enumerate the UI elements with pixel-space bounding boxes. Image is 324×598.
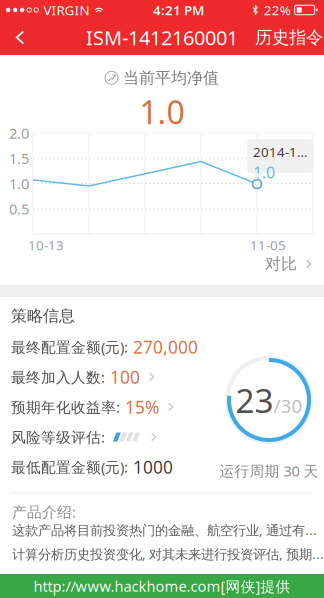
staticText: 2.0 bbox=[9, 123, 29, 143]
staticText: 11-05 bbox=[250, 236, 286, 254]
button[interactable]: 风险等级评估: bbox=[11, 422, 201, 452]
staticText: 最终配置金额(元): bbox=[11, 337, 128, 357]
staticText: 23 bbox=[235, 378, 273, 422]
staticText: 计算分析历史投资变化, 对其未来进行投资评估, 预期收益率在 bbox=[12, 545, 324, 563]
staticText: 这款产品将目前投资热门的金融、航空行业, 通过有效的大数据 bbox=[12, 521, 324, 539]
staticText: 对比 bbox=[265, 254, 297, 274]
staticText: 1.0 bbox=[253, 162, 275, 183]
staticText: 1000 bbox=[133, 455, 173, 478]
staticText: 当前平均净值 bbox=[123, 68, 219, 88]
staticText: VIRGIN bbox=[43, 1, 89, 19]
staticText: 运行周期 30 天 bbox=[219, 461, 318, 480]
button[interactable]: 预期年化收益率: bbox=[11, 392, 201, 422]
staticText: 1.0 bbox=[9, 174, 29, 193]
staticText: http://www.hackhome.com[网侠]提供 bbox=[33, 576, 290, 596]
staticText: 15% bbox=[125, 395, 159, 418]
staticText: 22% bbox=[264, 1, 291, 19]
button[interactable]: 对比 bbox=[254, 255, 324, 273]
staticText: 产品介绍: bbox=[12, 502, 76, 521]
staticText: 最低配置金额(元): bbox=[11, 457, 128, 477]
staticText: /30 bbox=[273, 393, 302, 418]
staticText: 策略信息 bbox=[11, 306, 75, 326]
staticText: ISM-1412160001 bbox=[86, 24, 238, 51]
button[interactable]: 最终加入人数: bbox=[11, 362, 201, 392]
staticText: 270,000 bbox=[133, 335, 198, 358]
staticText: 10-13 bbox=[28, 236, 64, 254]
button[interactable]: Back bbox=[0, 20, 40, 55]
staticText: 1.0 bbox=[139, 91, 184, 133]
staticText: 0.5 bbox=[9, 199, 29, 219]
staticText: 100 bbox=[110, 365, 140, 388]
staticText: 2014-11-05 bbox=[253, 143, 313, 161]
button[interactable]: 历史指令 bbox=[254, 20, 324, 55]
staticText: 1.5 bbox=[9, 149, 29, 168]
staticText: 预期年化收益率: bbox=[11, 397, 120, 417]
staticText: 4:21 PM bbox=[153, 1, 204, 19]
staticText: 风险等级评估: bbox=[11, 427, 105, 447]
staticText: 历史指令 bbox=[255, 27, 323, 48]
staticText: 最终加入人数: bbox=[11, 367, 105, 387]
